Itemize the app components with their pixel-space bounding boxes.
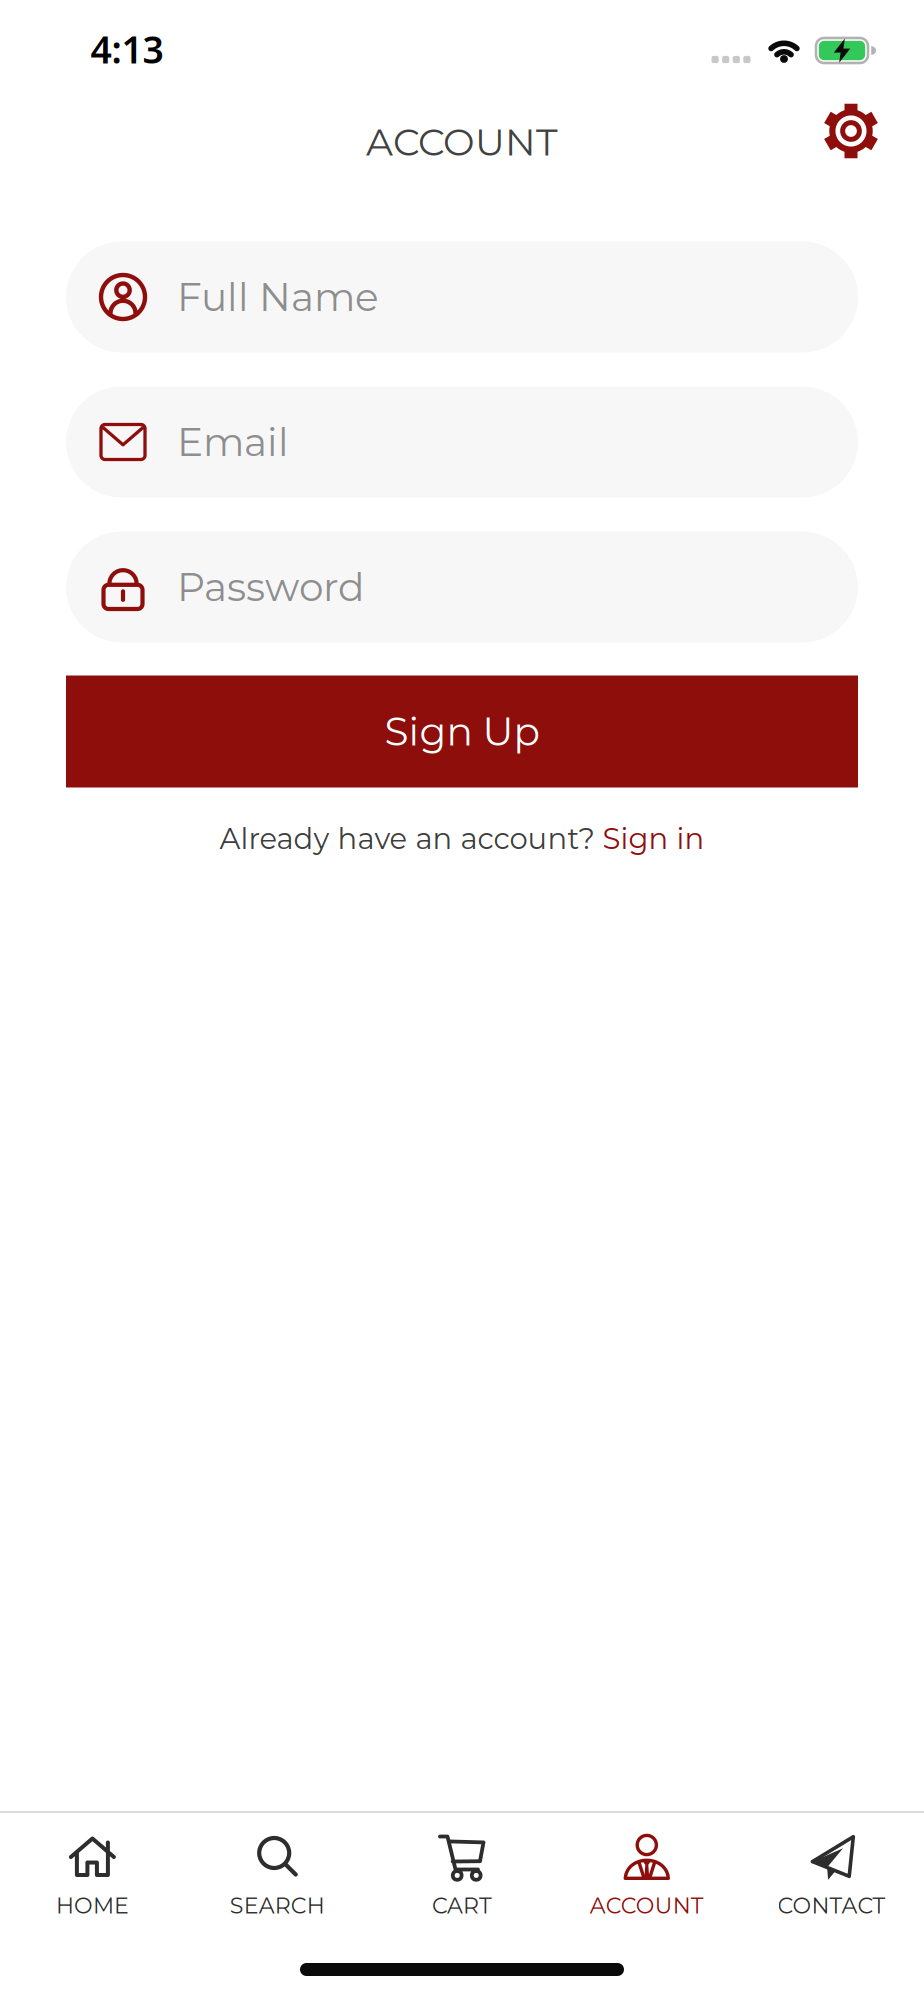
button[interactable]: Full Name (66, 241, 858, 352)
button[interactable]: SEARCH (185, 1821, 370, 1931)
button[interactable]: CONTACT (739, 1821, 924, 1931)
staticText: Sign in (602, 821, 704, 856)
button[interactable]: ACCOUNT (554, 1821, 739, 1931)
button[interactable]: Settings (822, 102, 880, 160)
staticText: CONTACT (778, 1892, 886, 1919)
button[interactable]: Password (66, 531, 858, 642)
button[interactable]: Email (66, 386, 858, 497)
button[interactable]: HOME (0, 1821, 185, 1931)
button[interactable]: Sign Up (66, 675, 858, 787)
staticText: ACCOUNT (590, 1892, 704, 1919)
staticText: Sign Up (384, 708, 539, 755)
button[interactable]: Sign in (602, 821, 704, 856)
staticText: Email (177, 418, 289, 466)
button[interactable]: CART (370, 1821, 554, 1931)
staticText: 4:13 (90, 24, 163, 74)
staticText: CART (432, 1892, 492, 1919)
staticText: HOME (56, 1892, 129, 1919)
staticText: ACCOUNT (366, 119, 558, 165)
staticText: Full Name (177, 273, 379, 321)
staticText: Password (177, 563, 364, 611)
staticText: SEARCH (230, 1892, 325, 1919)
staticText: Already have an account? (219, 821, 602, 856)
